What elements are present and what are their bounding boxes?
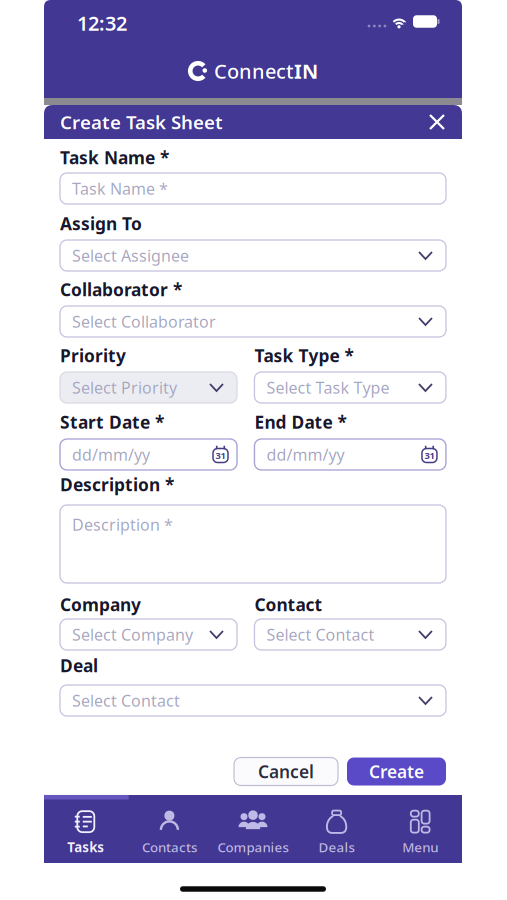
- staticText: Task Type *: [254, 344, 353, 367]
- staticText: 12:32: [77, 10, 127, 36]
- staticText: Select Company: [72, 624, 193, 645]
- staticText: Description *: [72, 514, 173, 535]
- staticText: Deals: [319, 838, 355, 856]
- staticText: 31: [215, 449, 225, 462]
- staticText: Task Name *: [72, 178, 168, 199]
- button[interactable]: Select Collaborator: [60, 306, 446, 337]
- staticText: dd/mm/yy: [266, 444, 344, 465]
- button[interactable]: Contacts: [128, 804, 211, 862]
- button[interactable]: Select Contact: [60, 685, 446, 716]
- staticText: Create Task Sheet: [60, 110, 223, 134]
- button[interactable]: Close: [422, 107, 452, 137]
- staticText: Collaborator *: [60, 278, 182, 301]
- staticText: Select Assignee: [72, 245, 189, 266]
- button[interactable]: dd/mm/yy: [60, 439, 237, 470]
- button[interactable]: dd/mm/yy: [254, 439, 446, 470]
- button[interactable]: Tasks: [44, 804, 128, 862]
- staticText: Select Contact: [266, 624, 374, 645]
- staticText: dd/mm/yy: [72, 444, 150, 465]
- staticText: ConnectIN: [214, 58, 318, 84]
- button[interactable]: Select Assignee: [60, 240, 446, 271]
- staticText: Task Name *: [60, 146, 169, 169]
- button[interactable]: Cancel: [234, 757, 338, 785]
- staticText: Select Priority: [72, 377, 177, 398]
- staticText: Menu: [402, 838, 438, 856]
- button[interactable]: Companies: [211, 804, 295, 862]
- staticText: 31: [424, 449, 434, 462]
- staticText: Contact: [254, 593, 322, 616]
- staticText: Start Date *: [60, 410, 164, 433]
- staticText: Companies: [217, 838, 288, 856]
- staticText: Cancel: [258, 760, 314, 783]
- staticText: Select Contact: [72, 690, 180, 711]
- button[interactable]: Select Contact: [254, 619, 446, 650]
- staticText: Contacts: [142, 838, 197, 856]
- staticText: Priority: [60, 344, 126, 367]
- staticText: Assign To: [60, 212, 142, 235]
- button[interactable]: Create: [347, 757, 446, 785]
- button[interactable]: Select Task Type: [254, 372, 446, 403]
- button[interactable]: Select Priority: [60, 372, 237, 403]
- staticText: Company: [60, 593, 141, 616]
- button[interactable]: Deals: [295, 804, 378, 862]
- staticText: Description *: [60, 473, 174, 496]
- button[interactable]: ConnectIN Home: [188, 58, 318, 84]
- staticText: Deal: [60, 654, 98, 677]
- staticText: Create: [369, 760, 424, 783]
- button[interactable]: Menu: [378, 804, 462, 862]
- staticText: Select Collaborator: [72, 311, 216, 332]
- button[interactable]: Select Company: [60, 619, 237, 650]
- staticText: Tasks: [67, 838, 104, 856]
- staticText: End Date *: [254, 410, 346, 433]
- button[interactable]: Description *: [60, 505, 446, 583]
- staticText: Select Task Type: [266, 377, 389, 398]
- button[interactable]: Task Name *: [60, 173, 446, 204]
